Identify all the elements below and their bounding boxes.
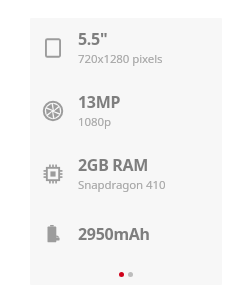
staticText: 5.5" — [78, 28, 108, 50]
other: Processor — [36, 157, 70, 191]
staticText: 2GB RAM — [78, 154, 149, 176]
button[interactable]: Display size — [36, 28, 214, 67]
staticText: Snapdragon 410 — [78, 177, 166, 193]
button[interactable]: Processor — [36, 154, 214, 193]
staticText: 2950mAh — [78, 223, 150, 245]
button[interactable] — [128, 272, 133, 277]
staticText: 720x1280 pixels — [78, 51, 163, 67]
staticText: 1080p — [78, 114, 111, 130]
other: Camera — [36, 94, 70, 128]
staticText: 13MP — [78, 91, 121, 113]
button[interactable]: Battery — [36, 217, 214, 251]
button[interactable] — [119, 272, 124, 277]
other: Battery — [36, 217, 70, 251]
other: Display size — [36, 31, 70, 65]
button[interactable]: Camera — [36, 91, 214, 130]
